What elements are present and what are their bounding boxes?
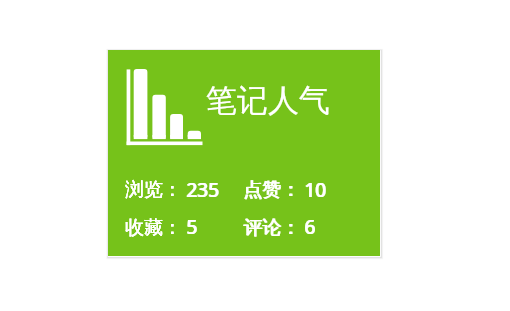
staticText: 收藏： (125, 216, 182, 240)
staticText: 10 (304, 177, 326, 203)
other: Note statistics chart (108, 50, 380, 256)
staticText: 评论： (244, 216, 301, 240)
staticText: 5 (186, 214, 197, 240)
staticText: 点赞： (243, 178, 300, 202)
staticText: 10 (305, 177, 327, 203)
staticText: 点赞： (244, 178, 301, 202)
staticText: 浏览： (125, 178, 182, 202)
staticText: 笔记人气 (206, 81, 330, 120)
staticText: 6 (304, 214, 315, 240)
staticText: 浏览： (125, 178, 182, 202)
staticText: 收藏： (125, 216, 182, 240)
staticText: 6 (305, 214, 316, 240)
staticText: 235 (186, 177, 219, 203)
button[interactable]: Note statistics chart (108, 50, 380, 256)
staticText: 5 (187, 214, 198, 240)
staticText: 评论： (243, 216, 300, 240)
staticText: 235 (187, 177, 220, 203)
